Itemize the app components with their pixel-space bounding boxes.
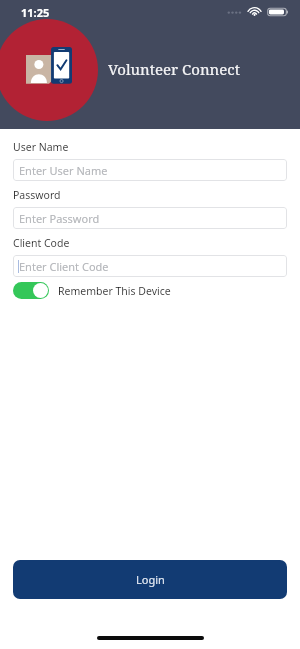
staticText: Enter Password: [19, 211, 100, 226]
button[interactable]: Remember This Device: [13, 282, 171, 299]
staticText: Volunteer Connect: [108, 59, 240, 79]
staticText: User Name: [13, 140, 69, 154]
staticText: Password: [13, 188, 61, 202]
other: Volunteer Connect logo: [26, 47, 72, 93]
button[interactable]: Login: [13, 560, 287, 599]
staticText: Enter Client Code: [19, 259, 109, 274]
staticText: Client Code: [13, 236, 70, 250]
staticText: 11:25: [21, 5, 50, 20]
button[interactable]: Enter User Name: [13, 159, 287, 181]
staticText: Enter User Name: [19, 163, 108, 178]
staticText: Login: [136, 572, 165, 587]
button[interactable]: Enter Password: [13, 207, 287, 229]
staticText: Remember This Device: [58, 284, 171, 298]
button[interactable]: Enter Client Code: [13, 255, 287, 277]
